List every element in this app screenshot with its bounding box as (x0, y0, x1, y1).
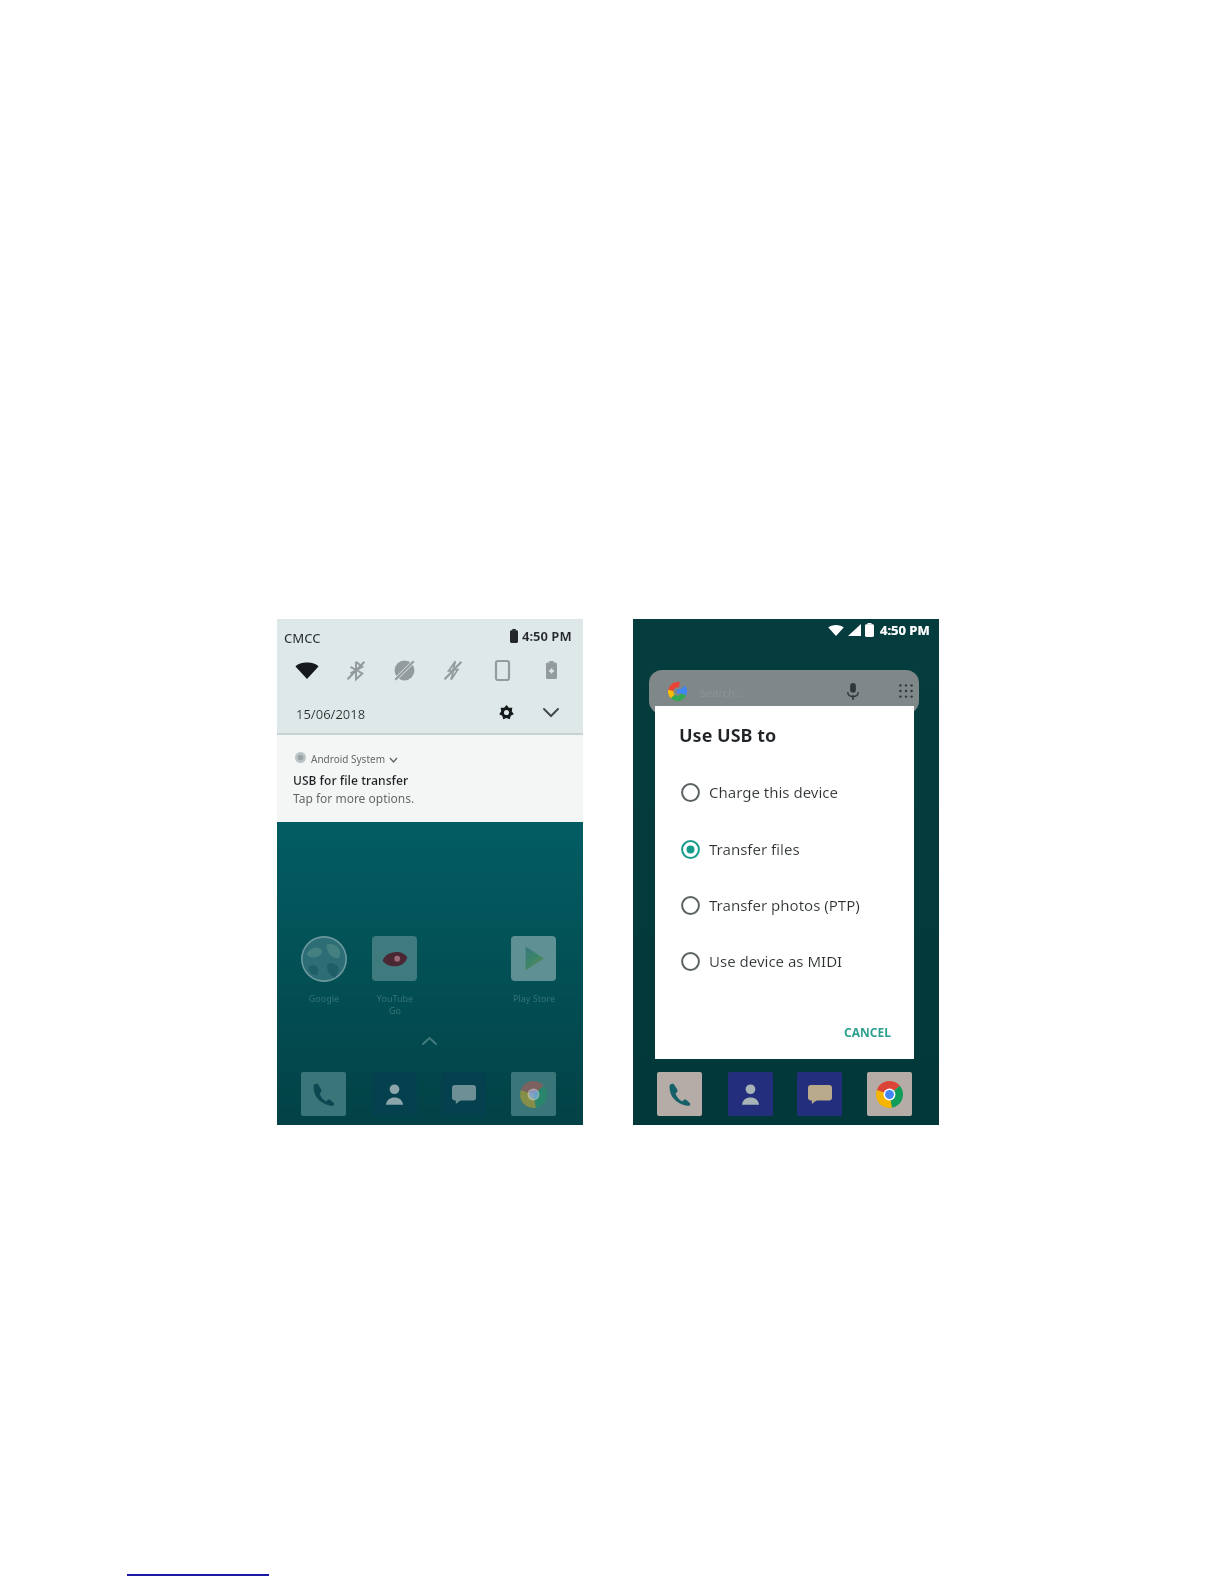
button[interactable]: Transfer photos (PTP) (655, 889, 914, 921)
button[interactable]: Android System (277, 735, 583, 822)
button[interactable]: CANCEL (833, 1017, 901, 1047)
button[interactable]: Messages (797, 1072, 842, 1116)
button[interactable]: Use device as MIDI (655, 945, 914, 977)
staticText: Google (288, 992, 360, 1004)
staticText: 4:50 PM (522, 627, 572, 645)
staticText: Charge this device (709, 782, 838, 802)
button[interactable]: Contacts (372, 1072, 417, 1116)
button[interactable]: Wi-Fi (291, 654, 323, 686)
button[interactable]: Auto-rotate (486, 654, 518, 686)
staticText: Use device as MIDI (709, 951, 843, 971)
staticText: Search... (700, 685, 744, 700)
staticText: Android System (311, 752, 386, 766)
button[interactable]: Charge this device (655, 776, 914, 808)
button[interactable]: Bluetooth off (340, 654, 372, 686)
staticText: Play Store (498, 992, 570, 1004)
button[interactable]: YouTube Go (372, 936, 417, 981)
button[interactable]: Search (649, 670, 919, 714)
staticText: YouTube Go (359, 992, 431, 1017)
staticText: Use USB to (679, 723, 777, 748)
button[interactable]: Chrome (867, 1072, 912, 1116)
staticText: USB for file transfer (293, 772, 409, 788)
button[interactable]: Transfer files (655, 833, 914, 865)
button[interactable]: Phone (657, 1072, 702, 1116)
staticText: Transfer files (709, 839, 800, 859)
button[interactable]: Settings (493, 699, 519, 725)
button[interactable]: Messages (441, 1072, 486, 1116)
button[interactable]: Expand (538, 699, 564, 725)
button[interactable]: Chrome (511, 1072, 556, 1116)
staticText: Tap for more options. (293, 790, 415, 806)
button[interactable]: Phone (301, 1072, 346, 1116)
staticText: 4:50 PM (880, 621, 930, 639)
button[interactable]: Flashlight off (437, 654, 469, 686)
staticText: CMCC (284, 629, 321, 647)
button[interactable]: Do not disturb (388, 654, 420, 686)
staticText: 15/06/2018 (296, 705, 366, 723)
button[interactable]: Contacts (728, 1072, 773, 1116)
button[interactable]: Battery saver (535, 654, 567, 686)
staticText: Transfer photos (PTP) (709, 895, 860, 915)
button[interactable]: Google (301, 936, 347, 982)
staticText: CANCEL (844, 1024, 891, 1040)
button[interactable]: Play Store (511, 936, 556, 981)
